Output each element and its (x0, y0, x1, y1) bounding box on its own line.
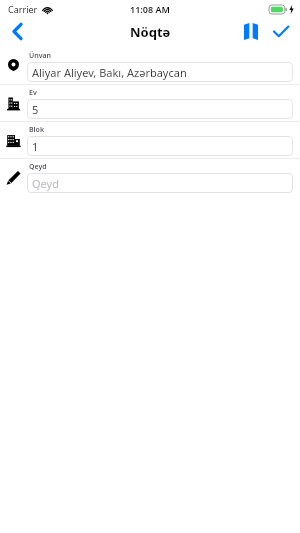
staticText: 11:08 AM (130, 3, 170, 15)
staticText: Nöqtə (130, 23, 171, 41)
button[interactable]: Ev (0, 85, 300, 121)
staticText: Qeyd (32, 176, 59, 191)
button[interactable]: Blok (0, 122, 300, 158)
staticText: 5 (32, 102, 39, 117)
button[interactable]: Ünvan (0, 48, 300, 84)
button[interactable]: Qeyd (0, 159, 300, 195)
staticText: Ev (29, 88, 37, 98)
staticText: Ünvan (29, 51, 52, 61)
staticText: Qeyd (29, 162, 47, 172)
staticText: Aliyar Aliyev, Bakı, Azərbaycan (32, 65, 187, 80)
staticText: Blok (29, 125, 45, 135)
staticText: Carrier (8, 3, 38, 15)
button[interactable]: Map (236, 18, 266, 45)
staticText: 1 (32, 139, 39, 154)
button[interactable]: Back (0, 18, 34, 45)
button[interactable]: Done (266, 18, 296, 45)
